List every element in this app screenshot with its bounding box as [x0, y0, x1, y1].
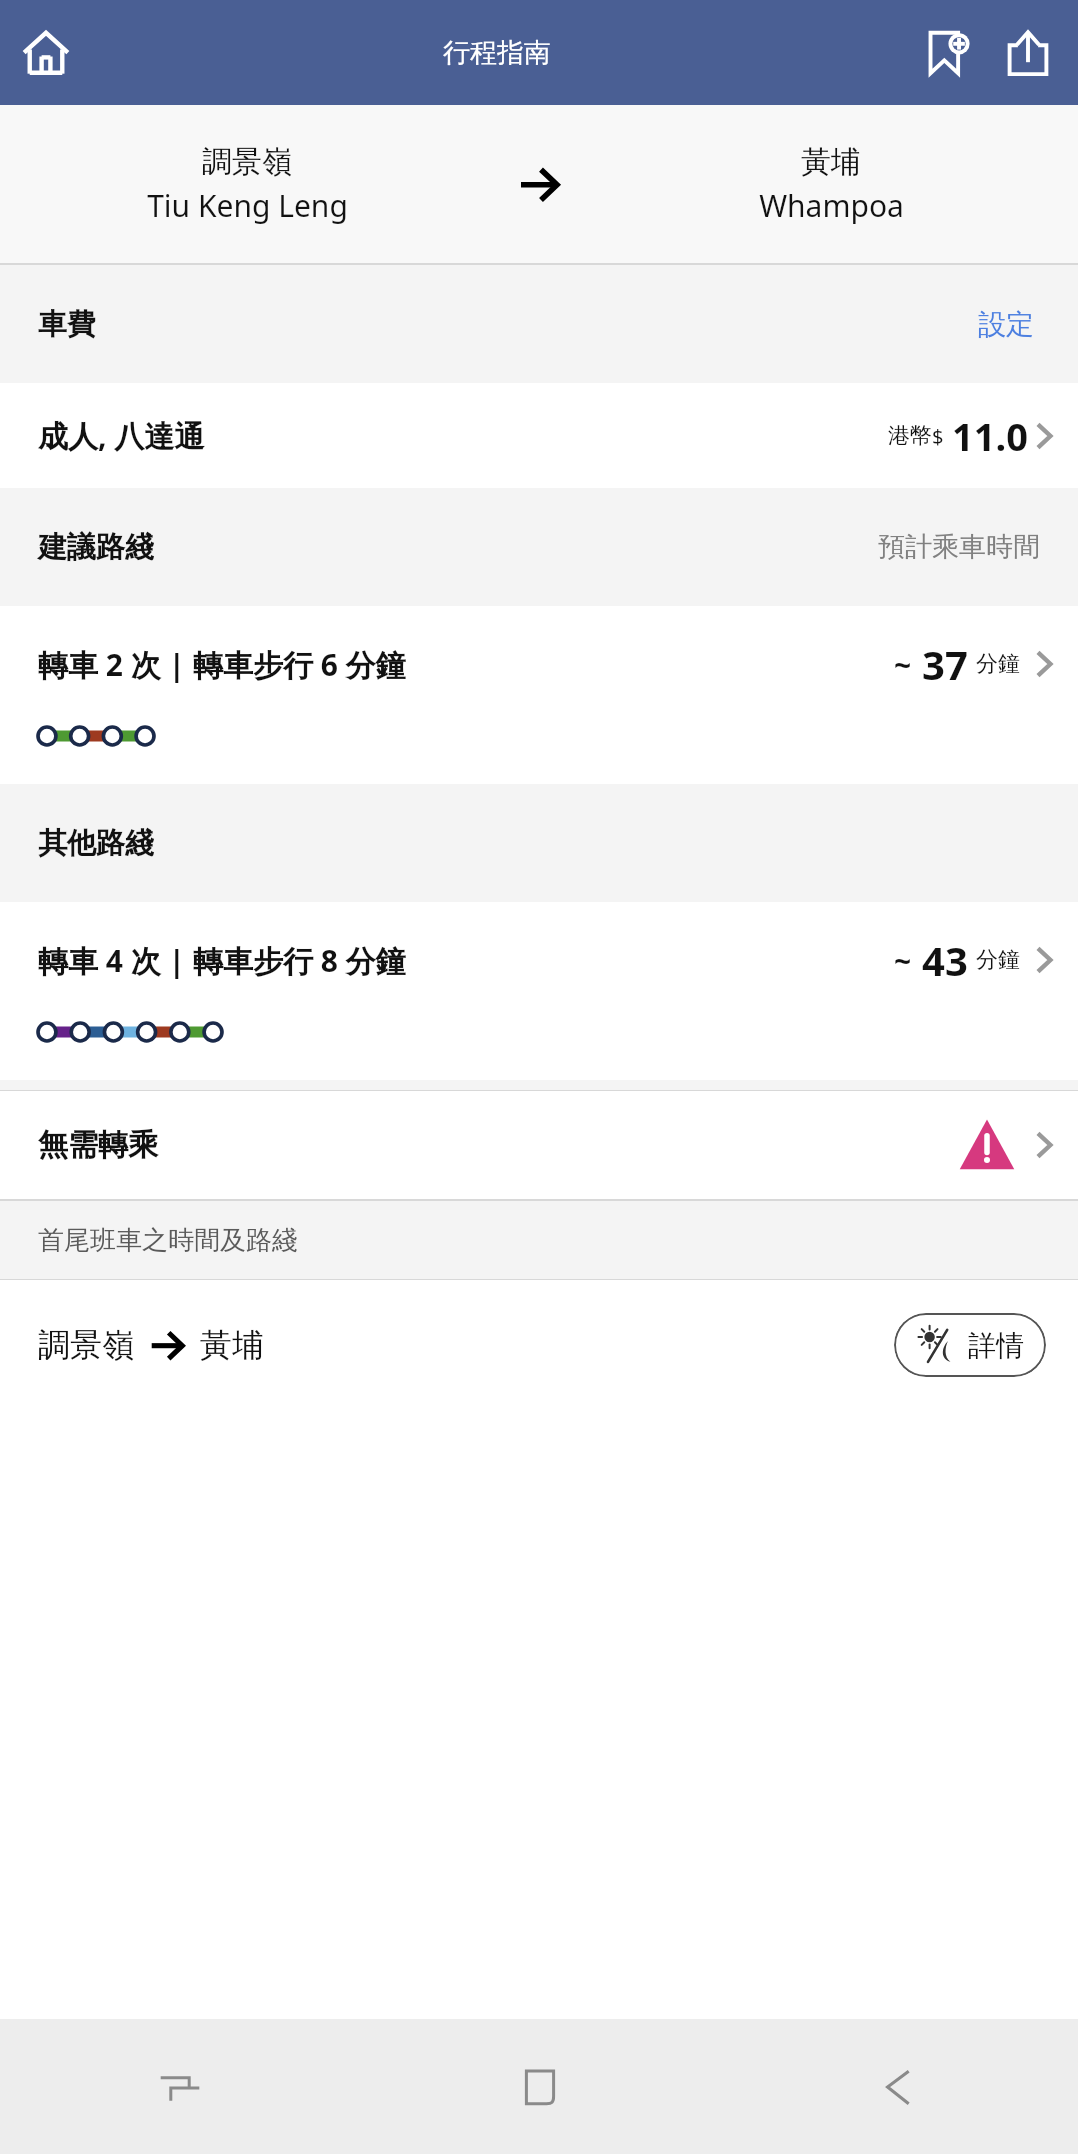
staticText: Whampoa — [759, 185, 904, 226]
button[interactable]: 轉車 2 次 | 轉車步行 6 分鐘 — [0, 606, 1078, 784]
staticText: 調景嶺 — [38, 1325, 134, 1365]
staticText: 調景嶺 — [202, 143, 292, 181]
staticText: Tiu Keng Leng — [147, 185, 348, 226]
button[interactable]: 成人, 八達通 — [0, 383, 1078, 488]
staticText: 設定 — [978, 307, 1034, 342]
staticText: 行程指南 — [443, 36, 551, 70]
button[interactable]: 詳情 — [894, 1313, 1046, 1377]
staticText: 11.0 — [952, 410, 1028, 462]
staticText: ~ — [894, 940, 912, 981]
button[interactable]: 轉車 4 次 | 轉車步行 8 分鐘 — [0, 902, 1078, 1080]
staticText: 港幣 — [888, 422, 932, 450]
staticText: $ — [932, 423, 944, 450]
staticText: ~ — [894, 644, 912, 685]
button[interactable]: Home — [10, 17, 82, 89]
staticText: 黃埔 — [801, 143, 861, 181]
staticText: 分鐘 — [976, 650, 1020, 678]
staticText: 無需轉乘 — [38, 1126, 158, 1164]
button[interactable]: Recent apps — [0, 2019, 360, 2154]
button[interactable]: Bookmark — [912, 17, 984, 89]
button[interactable]: 無需轉乘 — [0, 1091, 1078, 1199]
staticText: 成人, 八達通 — [38, 415, 205, 456]
button[interactable]: Back — [719, 2019, 1078, 2154]
button[interactable]: 調景嶺 — [0, 105, 1078, 263]
button[interactable]: 調景嶺 — [38, 1325, 264, 1365]
button[interactable]: 設定 — [972, 301, 1040, 348]
staticText: 43 — [922, 933, 968, 987]
staticText: 詳情 — [968, 1328, 1024, 1363]
staticText: 其他路綫 — [38, 825, 154, 862]
staticText: 轉車 2 次 | 轉車步行 6 分鐘 — [38, 644, 406, 685]
staticText: 轉車 4 次 | 轉車步行 8 分鐘 — [38, 940, 406, 981]
staticText: 建議路綫 — [38, 529, 154, 566]
staticText: 黃埔 — [200, 1325, 264, 1365]
staticText: 分鐘 — [976, 946, 1020, 974]
staticText: 預計乘車時間 — [878, 530, 1040, 564]
button[interactable]: Share — [992, 17, 1064, 89]
staticText: 37 — [922, 637, 968, 691]
staticText: 車費 — [38, 306, 96, 343]
button[interactable]: Home — [360, 2019, 719, 2154]
staticText: 首尾班車之時間及路綫 — [38, 1224, 298, 1257]
